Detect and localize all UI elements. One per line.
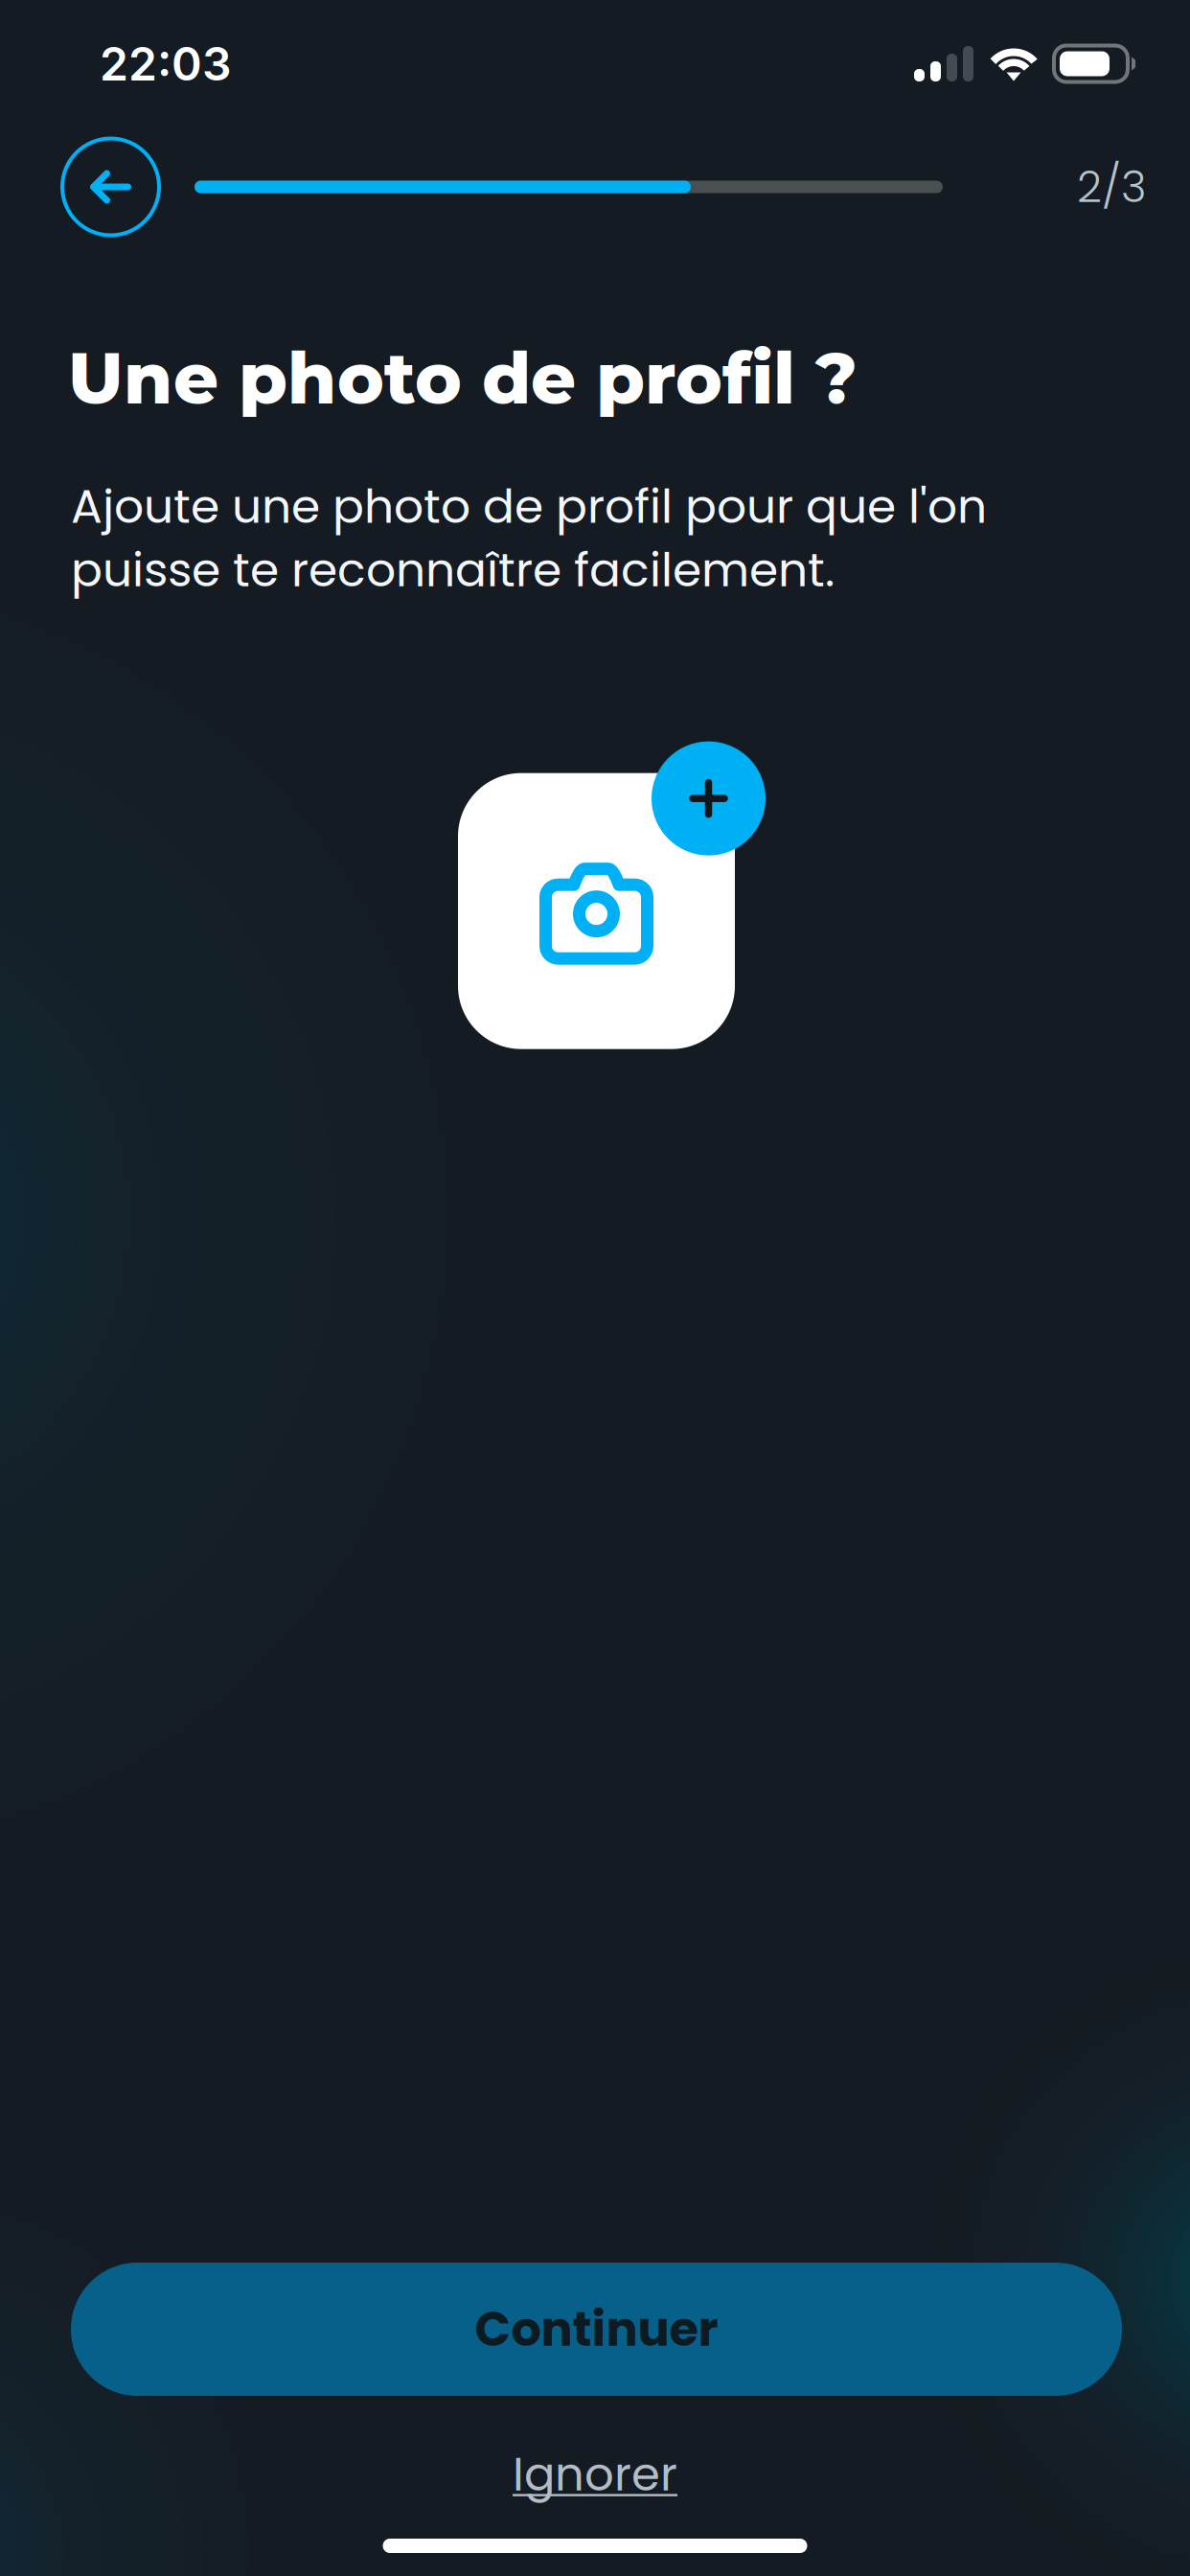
staticText: Une photo de profil ? (68, 335, 858, 421)
staticText: Ajoute une photo de profil pour que l'on… (71, 474, 987, 603)
button[interactable]: Add profile photo (458, 741, 766, 1049)
staticText: Ignorer (513, 2442, 677, 2507)
staticText: Continuer (475, 2296, 718, 2362)
staticText: 22:03 (100, 36, 232, 92)
button[interactable]: Ignorer (513, 2445, 677, 2504)
button[interactable]: Continuer (71, 2263, 1122, 2396)
button[interactable]: Back (62, 138, 159, 235)
staticText: 2/3 (1077, 156, 1147, 217)
